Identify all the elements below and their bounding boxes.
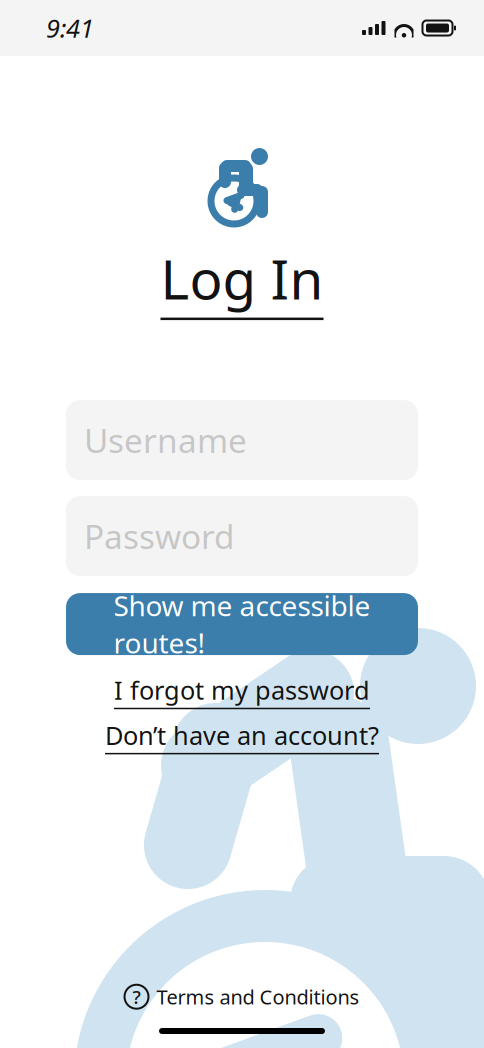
staticText: 9:41 (46, 11, 94, 45)
button[interactable]: Username (66, 400, 418, 480)
staticText: ? (132, 984, 140, 1009)
staticText: I forgot my password (114, 673, 370, 707)
staticText: Log In (160, 242, 323, 315)
staticText: Username (84, 418, 247, 462)
button[interactable]: Password (66, 496, 418, 576)
button[interactable]: I forgot my password (114, 673, 370, 709)
button[interactable]: Don’t have an account? (105, 718, 379, 754)
staticText: Password (84, 514, 235, 558)
button[interactable]: Show me accessible routes! (66, 593, 418, 655)
button[interactable]: ? (124, 983, 359, 1010)
staticText: Show me accessible routes! (113, 587, 370, 661)
staticText: Terms and Conditions (156, 983, 359, 1010)
staticText: Don’t have an account? (105, 718, 379, 752)
